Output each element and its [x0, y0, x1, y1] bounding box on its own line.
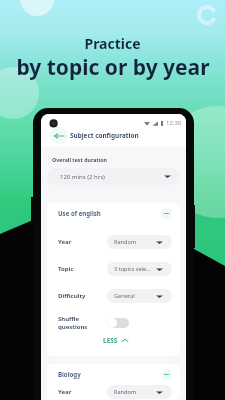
- staticText: Practice: [84, 34, 141, 53]
- staticText: Overall test duration: [52, 156, 108, 163]
- staticText: LESS: [103, 336, 118, 345]
- button[interactable]: Random: [107, 235, 172, 249]
- staticText: Year: [58, 388, 72, 396]
- staticText: Topic: [58, 265, 74, 273]
- staticText: 3 topics sele...: [114, 265, 151, 273]
- button[interactable]: 120 mins (2 hrs): [47, 168, 180, 185]
- button[interactable]: Use of english: [58, 203, 172, 223]
- button[interactable]: General: [107, 289, 172, 303]
- staticText: Subject configuration: [70, 131, 139, 140]
- staticText: General: [114, 292, 135, 300]
- button[interactable]: Random: [107, 385, 172, 399]
- staticText: by topic or by year: [16, 53, 210, 82]
- staticText: Difficulty: [58, 292, 86, 300]
- button[interactable]: 3 topics sele...: [107, 262, 172, 276]
- staticText: Random: [114, 388, 137, 396]
- button[interactable]: Collapse Biology: [161, 369, 172, 380]
- button[interactable]: Biology: [58, 364, 172, 384]
- staticText: Shuffle: [58, 315, 80, 323]
- button[interactable]: LESS: [58, 336, 172, 353]
- staticText: questions: [58, 323, 88, 331]
- staticText: 120 mins (2 hrs): [60, 173, 105, 181]
- staticText: Biology: [58, 370, 81, 378]
- button[interactable]: Shuffle questions toggle: [107, 318, 129, 328]
- button[interactable]: Back: [50, 127, 68, 144]
- button[interactable]: Collapse Use of english: [161, 208, 172, 219]
- staticText: Use of english: [58, 209, 101, 217]
- staticText: Random: [114, 238, 137, 246]
- staticText: Year: [58, 238, 72, 246]
- staticText: 12:30: [166, 119, 182, 127]
